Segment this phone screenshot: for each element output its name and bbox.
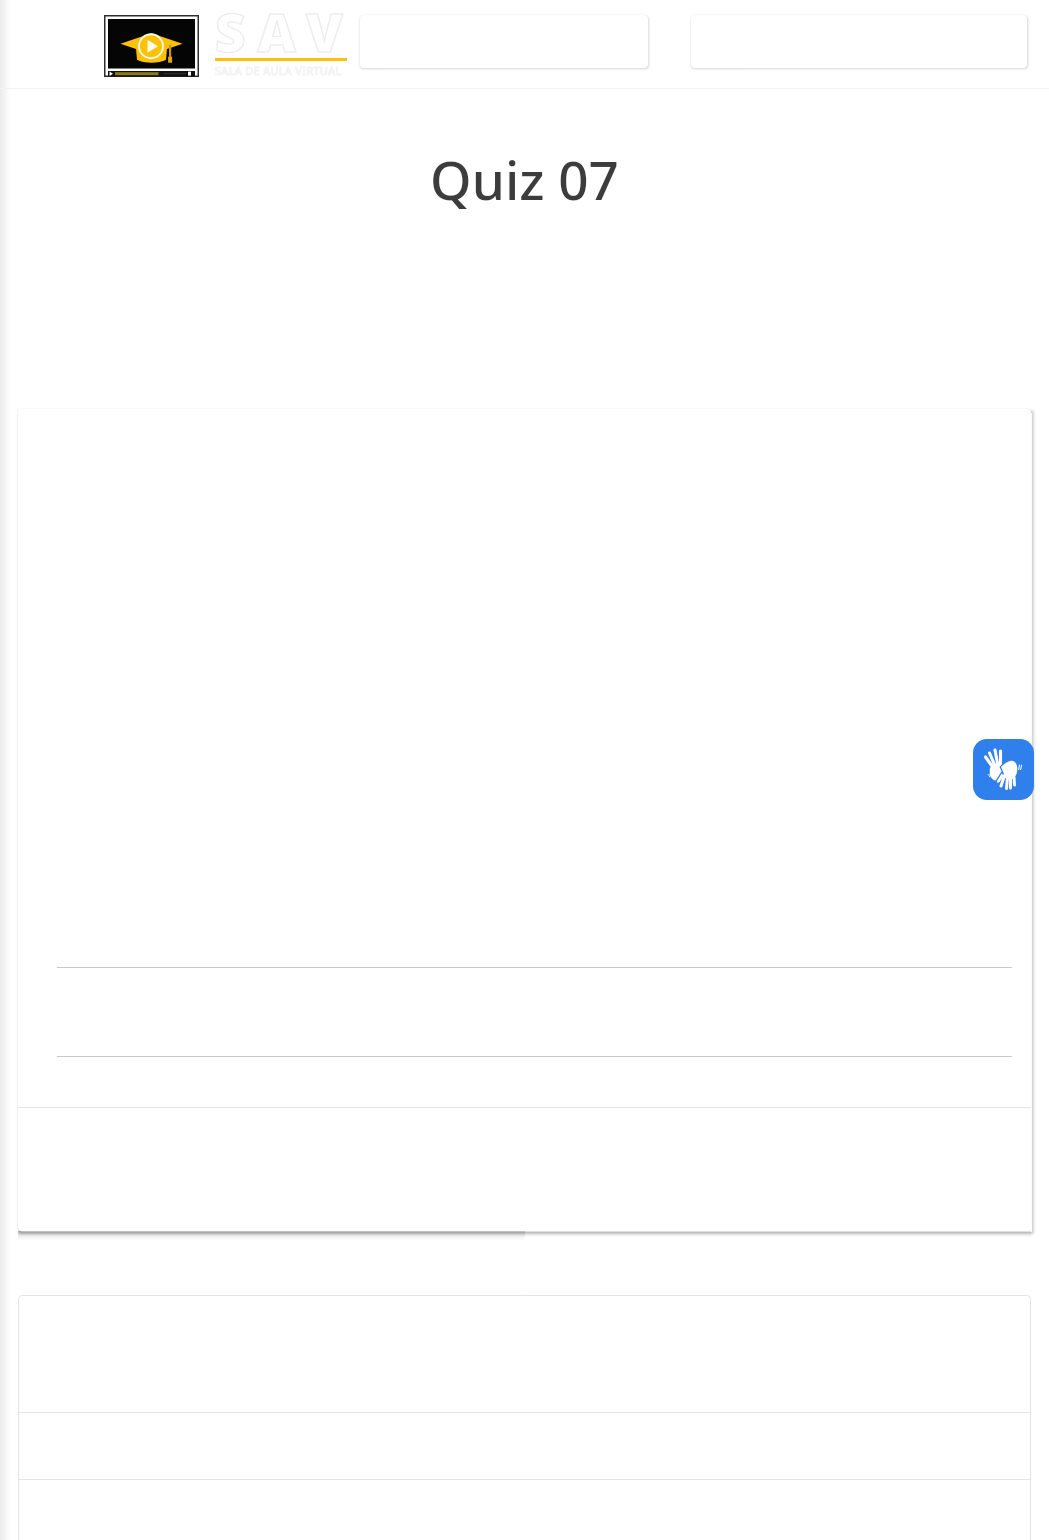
staticText: SALA DE AULA VIRTUAL: [215, 63, 342, 78]
button[interactable]: SAV - Sala de Aula Virtual, início: [100, 13, 350, 79]
button[interactable]: Enunciado da questão: [18, 409, 1031, 967]
button[interactable]: Acessibilidade em Libras: [973, 739, 1034, 800]
staticText: SAV: [215, 0, 415, 67]
staticText: Quiz 07: [0, 143, 1049, 215]
